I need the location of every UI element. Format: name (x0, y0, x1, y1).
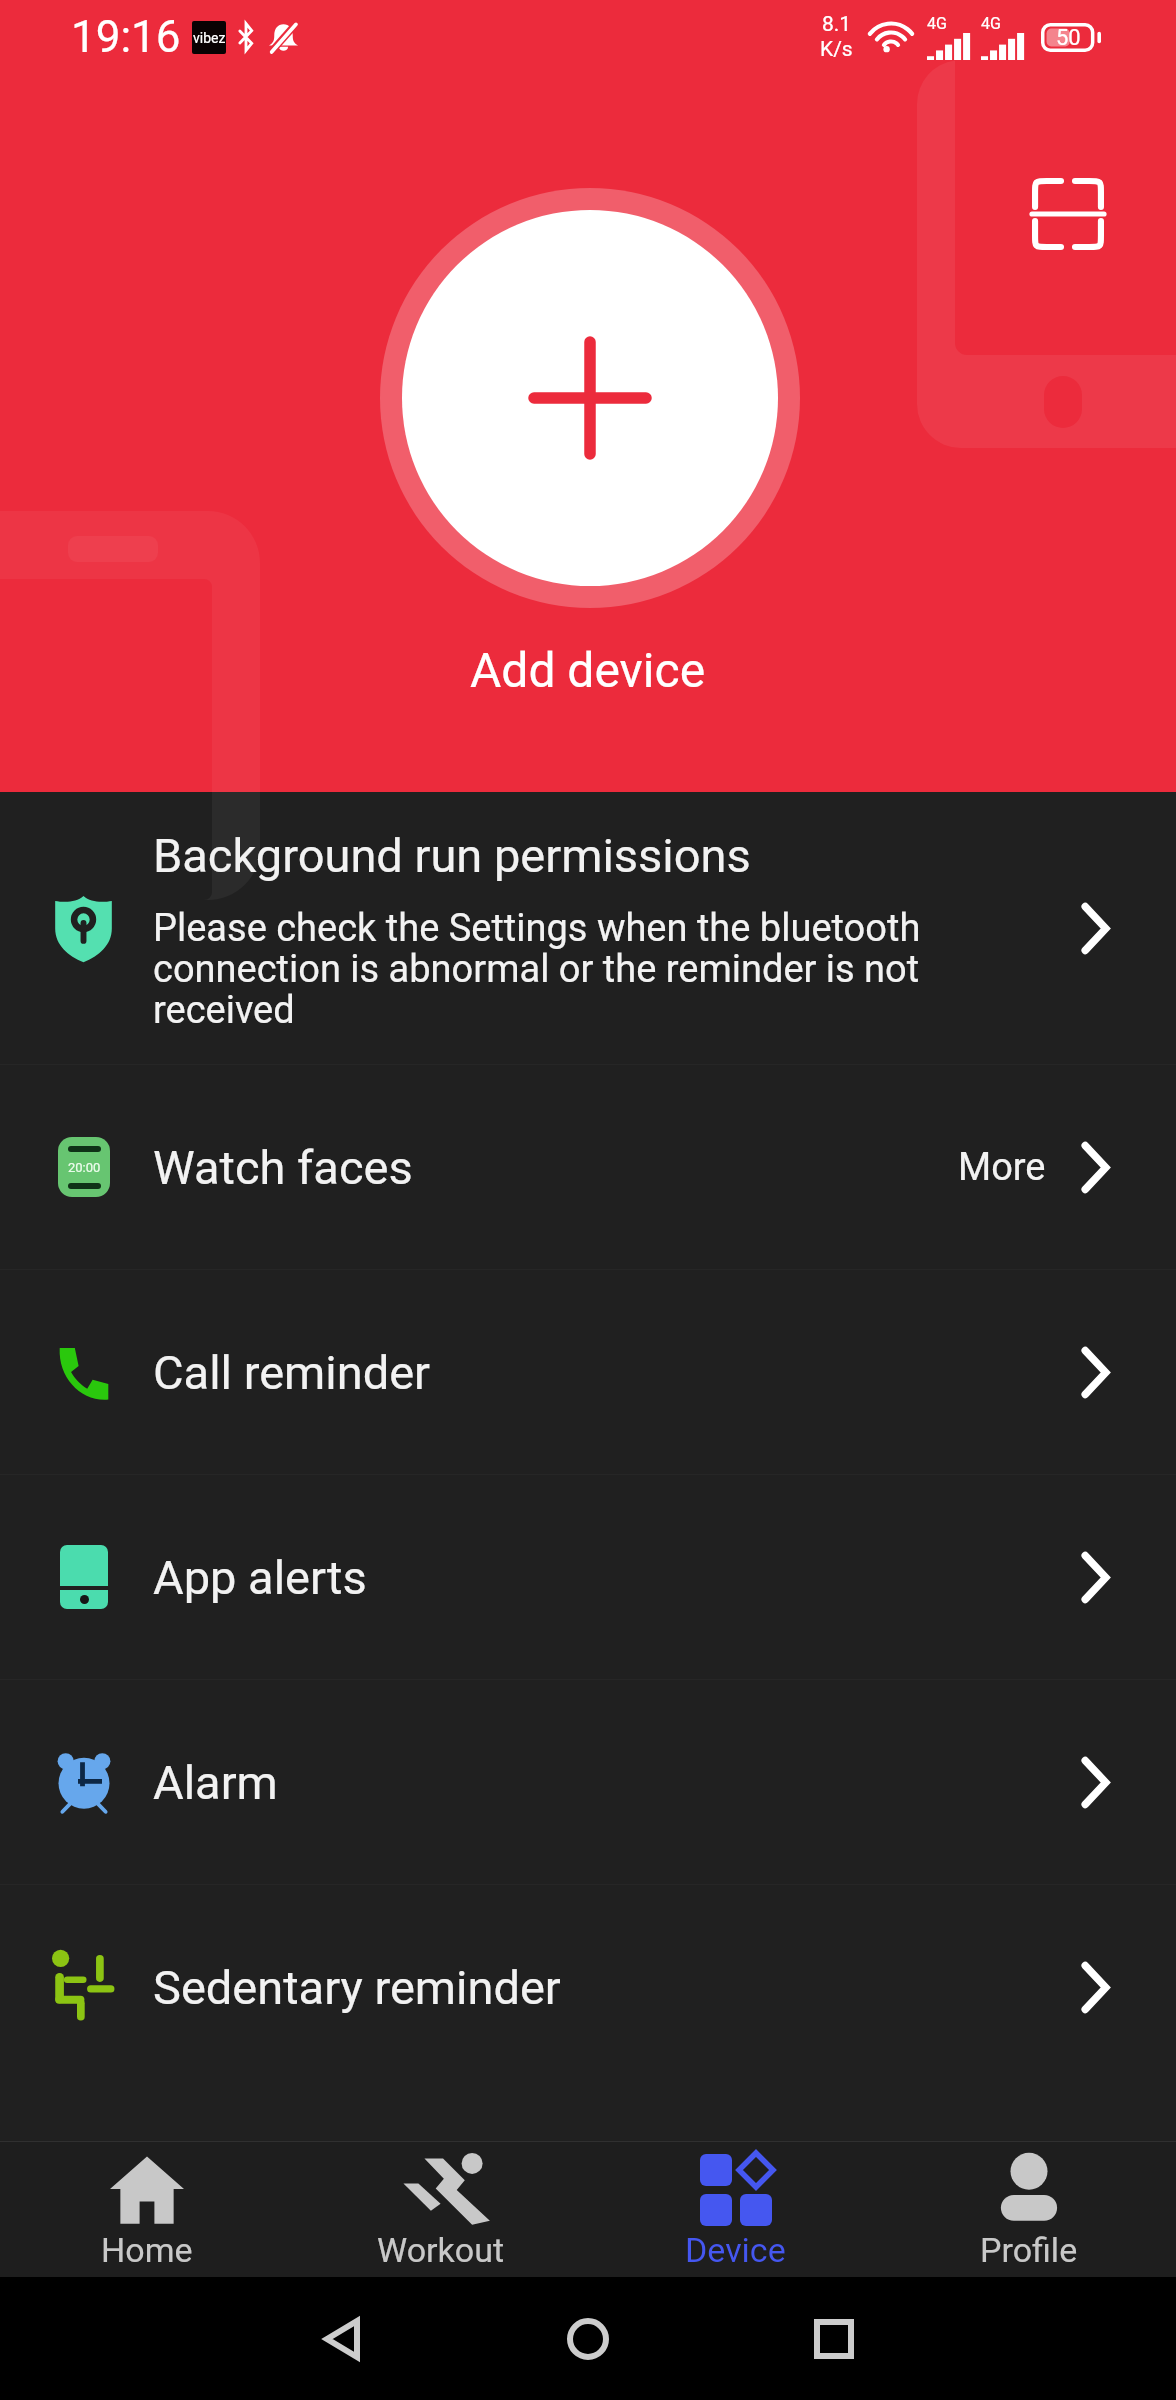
staticText: Watch faces (153, 1140, 413, 1195)
staticText: Home (101, 2230, 193, 2270)
staticText: Device (685, 2230, 786, 2270)
button[interactable]: 20:00 (0, 1065, 1176, 1269)
staticText: 8.1 (822, 12, 852, 37)
staticText: Call reminder (153, 1345, 431, 1400)
button[interactable]: Sedentary reminder (0, 1885, 1176, 2089)
staticText: 4G (981, 14, 1001, 33)
button[interactable]: Device (588, 2142, 882, 2277)
button[interactable]: Call reminder (0, 1270, 1176, 1474)
staticText: vibez (193, 30, 226, 46)
staticText: K/s (820, 37, 853, 62)
staticText: 20:00 (68, 1160, 101, 1175)
button[interactable]: App alerts (0, 1475, 1176, 1679)
staticText: Workout (377, 2230, 505, 2270)
button[interactable]: Alarm (0, 1680, 1176, 1884)
staticText: More (958, 1145, 1046, 1190)
other: Home (563, 2314, 613, 2364)
staticText: 50 (1056, 25, 1081, 51)
staticText: 4G (927, 14, 947, 33)
staticText: Please check the Settings when the bluet… (153, 906, 943, 1033)
staticText: Add device (470, 642, 706, 698)
staticText: Background run permissions (153, 828, 751, 883)
staticText: Profile (980, 2230, 1078, 2270)
other: Recents (809, 2314, 859, 2364)
staticText: Sedentary reminder (153, 1960, 561, 2015)
button[interactable]: Workout (294, 2142, 588, 2277)
button[interactable]: Home (0, 2142, 294, 2277)
button[interactable]: Background run permissions (0, 792, 1176, 1064)
staticText: 19:16 (71, 11, 181, 63)
other: Back (317, 2314, 367, 2364)
button[interactable]: Profile (882, 2142, 1176, 2277)
staticText: Alarm (153, 1755, 278, 1810)
staticText: App alerts (153, 1550, 367, 1605)
button[interactable]: Scan QR code (1006, 152, 1130, 276)
button[interactable] (380, 188, 800, 608)
